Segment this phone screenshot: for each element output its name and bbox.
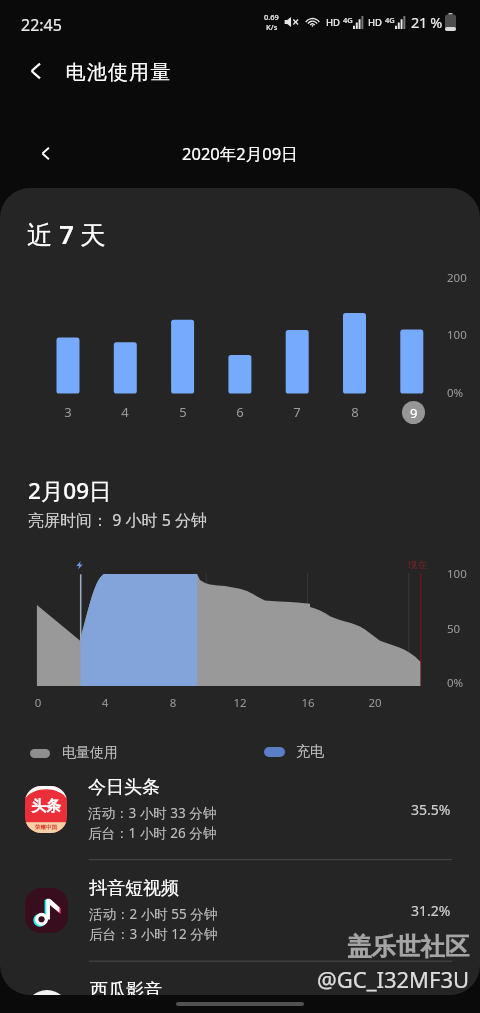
staticText: 电池使用量 bbox=[65, 60, 171, 85]
staticText: HD bbox=[326, 16, 341, 29]
staticText: 0% bbox=[447, 385, 464, 401]
staticText: 现在 bbox=[408, 559, 427, 571]
button[interactable]: Previous day bbox=[28, 136, 62, 170]
staticText: 抖音短视频 bbox=[89, 877, 179, 900]
staticText: 西瓜影音 bbox=[90, 979, 162, 995]
button[interactable]: Back bbox=[7, 46, 65, 96]
staticText: 22:45 bbox=[21, 14, 62, 36]
staticText: 4G bbox=[385, 15, 395, 25]
staticText: 近 7 天 bbox=[27, 217, 106, 252]
staticText: HD bbox=[368, 16, 383, 29]
staticText: 盖乐世社区 bbox=[347, 931, 470, 962]
staticText: 4G bbox=[343, 15, 353, 25]
staticText: 5 bbox=[171, 403, 195, 421]
staticText: 2020年2月09日 bbox=[182, 142, 298, 165]
staticText: @GC_I32MF3U bbox=[317, 964, 470, 994]
button[interactable]: 头条 bbox=[0, 759, 480, 859]
staticText: 16 bbox=[296, 695, 320, 711]
staticText: 0% bbox=[447, 675, 464, 691]
staticText: 8 bbox=[343, 403, 367, 421]
staticText: 头条 bbox=[31, 797, 61, 816]
staticText: 今日头条 bbox=[88, 776, 160, 799]
staticText: 200 bbox=[447, 270, 467, 286]
staticText: K/s bbox=[266, 22, 278, 32]
staticText: 100 bbox=[447, 566, 467, 582]
staticText: 3 bbox=[56, 403, 80, 421]
staticText: 活动：2 小时 55 分钟 bbox=[89, 905, 218, 923]
staticText: 4 bbox=[113, 403, 137, 421]
staticText: 21 % bbox=[411, 12, 442, 32]
button[interactable]: 西瓜影音 bbox=[0, 962, 480, 995]
staticText: 20 bbox=[363, 695, 387, 711]
staticText: 35.5% bbox=[411, 800, 451, 819]
staticText: 0 bbox=[26, 695, 50, 711]
staticText: 100 bbox=[447, 327, 467, 343]
staticText: 0.69 bbox=[264, 12, 279, 22]
staticText: 4 bbox=[93, 695, 117, 711]
staticText: 50 bbox=[447, 621, 461, 637]
staticText: 荣耀中国 bbox=[35, 824, 57, 831]
staticText: 活动：3 小时 33 分钟 bbox=[88, 804, 217, 822]
staticText: 31.2% bbox=[411, 901, 451, 920]
staticText: 7 bbox=[285, 403, 309, 421]
staticText: 后台：1 小时 26 分钟 bbox=[88, 824, 217, 842]
button[interactable]: 抖音短视频 bbox=[0, 860, 480, 960]
staticText: 电量使用 bbox=[62, 744, 118, 762]
staticText: 2月09日 bbox=[28, 475, 112, 506]
staticText: 9 bbox=[410, 404, 418, 422]
staticText: 8 bbox=[161, 695, 185, 711]
staticText: 6 bbox=[228, 403, 252, 421]
staticText: 亮屏时间： 9 小时 5 分钟 bbox=[28, 509, 207, 531]
staticText: 12 bbox=[228, 695, 252, 711]
button[interactable]: 充电 bbox=[264, 743, 324, 761]
staticText: 充电 bbox=[296, 743, 324, 761]
button[interactable]: 电量使用 bbox=[30, 744, 118, 762]
staticText: 后台：3 小时 12 分钟 bbox=[89, 925, 218, 943]
